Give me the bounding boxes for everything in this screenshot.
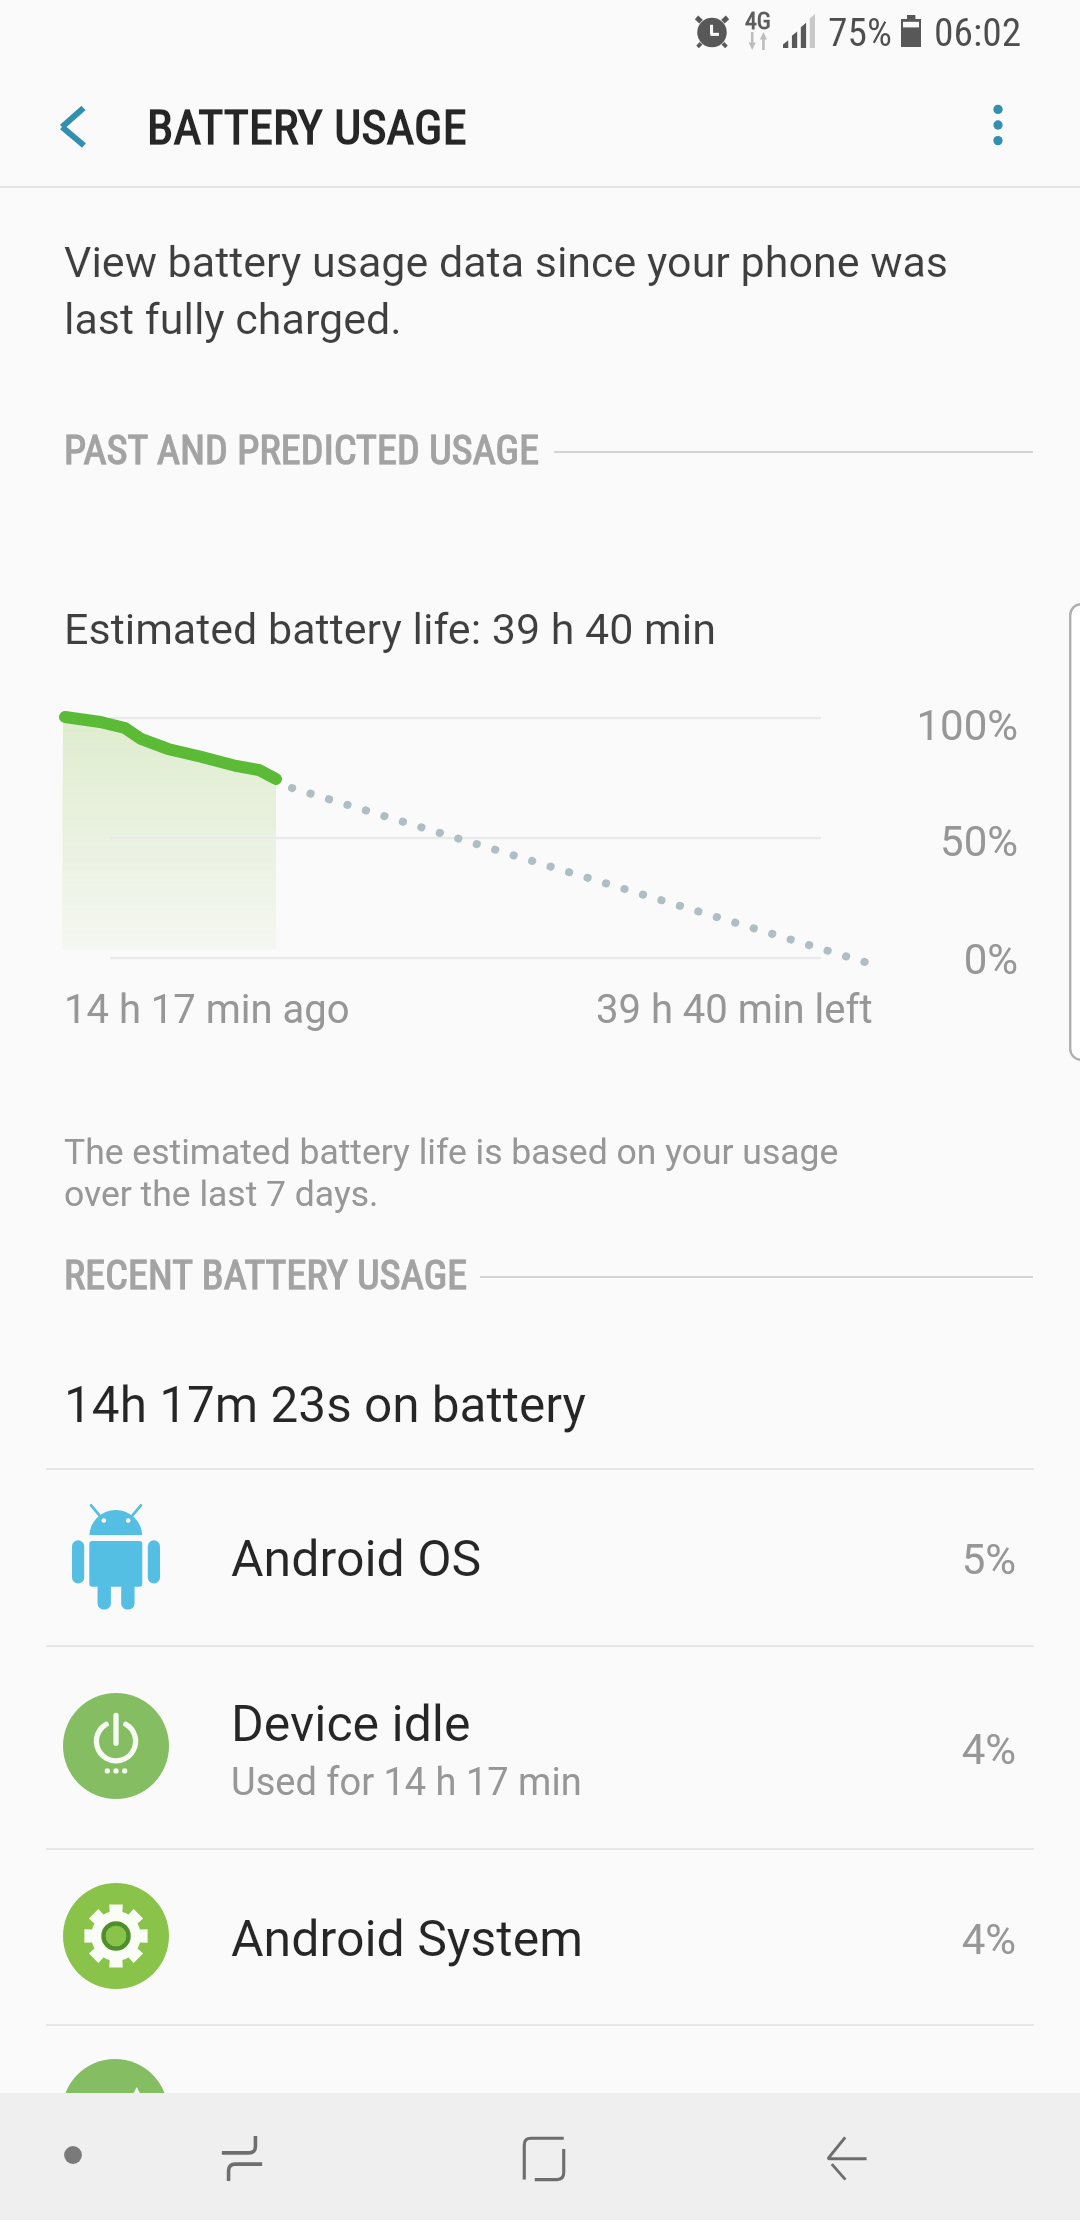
staticText: 39 h 40 min left — [596, 986, 873, 1033]
staticText: 4% — [961, 1915, 1016, 1964]
button[interactable]: Home — [489, 2103, 599, 2213]
staticText: View battery usage data since your phone… — [64, 237, 949, 287]
staticText: The estimated battery life is based on y… — [64, 1131, 839, 1173]
staticText: 14 h 17 min ago — [64, 986, 350, 1033]
staticText: 5% — [961, 1535, 1016, 1584]
staticText: RECENT BATTERY USAGE — [64, 1252, 468, 1299]
staticText: PAST AND PREDICTED USAGE — [64, 427, 540, 474]
staticText: BATTERY USAGE — [147, 99, 467, 155]
button[interactable]: Keyboard indicator — [38, 2120, 108, 2190]
button[interactable]: Back — [792, 2103, 902, 2213]
staticText: Device idle — [231, 1695, 471, 1754]
button[interactable] — [0, 1468, 1080, 1645]
staticText: 4% — [961, 1725, 1016, 1774]
button[interactable] — [0, 1645, 1080, 1848]
staticText: 0% — [963, 935, 1018, 984]
staticText: Android System — [231, 1910, 584, 1969]
staticText: last fully charged. — [64, 294, 402, 344]
staticText: 75% — [828, 9, 892, 55]
button[interactable]: Recent apps — [187, 2103, 297, 2213]
staticText: Android OS — [231, 1530, 482, 1589]
button[interactable] — [0, 1848, 1080, 2024]
button[interactable]: Navigate up — [30, 86, 110, 166]
staticText: Used for 14 h 17 min — [231, 1760, 582, 1805]
button[interactable]: More options — [958, 85, 1038, 165]
staticText: 50% — [940, 817, 1018, 866]
staticText: over the last 7 days. — [64, 1173, 379, 1215]
staticText: 14h 17m 23s on battery — [64, 1376, 586, 1434]
staticText: 100% — [916, 701, 1018, 750]
staticText: Estimated battery life: 39 h 40 min — [64, 604, 716, 654]
staticText: 4G — [745, 7, 772, 35]
staticText: 06:02 — [934, 9, 1022, 55]
